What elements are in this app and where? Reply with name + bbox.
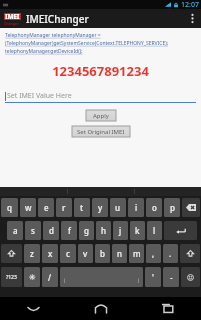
button[interactable]: q [1,198,18,217]
button[interactable]: b [95,244,110,263]
button[interactable]: v [78,244,93,263]
staticText: j [119,225,122,236]
button[interactable]: Space [60,267,143,287]
staticText: TelephonyManager telephonyManager = [5,32,101,39]
staticText: Set Original IMEI [77,128,125,136]
staticText: Changer [4,21,19,26]
staticText: o [152,202,157,213]
staticText: y [98,202,103,213]
button[interactable]: d [43,221,59,240]
staticText: a [13,225,18,236]
button[interactable]: Shift [180,244,200,263]
staticText: , [152,248,155,259]
button[interactable]: x [42,244,58,263]
button[interactable]: Backspace [182,198,200,217]
staticText: / [48,272,52,283]
button[interactable]: , [146,244,161,263]
staticText: l [153,225,156,236]
staticText: z [30,248,34,259]
staticText: e [44,202,49,213]
staticText: k [135,225,140,236]
button[interactable]: g [79,221,94,240]
staticText: n [117,248,123,259]
button[interactable]: Home [67,297,134,320]
button[interactable]: z [24,244,40,263]
staticText: i [135,202,138,213]
button[interactable]: Apply [86,110,116,121]
staticText: g [84,225,89,236]
staticText: s [31,225,35,236]
staticText: Set IMEI Value Here [7,91,72,101]
staticText: u [115,202,121,213]
button[interactable]: c [60,244,76,263]
staticText: f [68,225,71,236]
staticText: b [100,248,105,259]
button[interactable]: j [113,221,128,240]
button[interactable]: e [38,198,54,217]
button[interactable]: Emoji [181,267,200,287]
staticText: 1234567891234 [5,62,196,80]
button[interactable]: a [7,221,23,240]
staticText: . [169,248,172,259]
button[interactable]: ?123 [1,267,22,287]
button[interactable]: p [164,198,180,217]
staticText: t [80,202,84,213]
button[interactable]: / [42,267,58,287]
staticText: IMEI [5,13,20,20]
button[interactable]: n [112,244,127,263]
staticText: 12:07 [181,0,199,9]
button[interactable]: ' [145,267,161,287]
button[interactable]: t [74,198,90,217]
button[interactable]: ✳ [24,267,40,287]
staticText: ✳ [29,273,36,282]
button[interactable]: i [128,198,144,217]
button[interactable]: k [130,221,145,240]
staticText: p [170,202,175,213]
staticText: d [49,225,54,236]
button[interactable]: - [163,267,179,287]
button[interactable]: More options [183,9,201,28]
button[interactable]: Set Original IMEI [72,126,130,137]
button[interactable]: l [147,221,162,240]
staticText: h [101,225,107,236]
button[interactable]: Shift [1,244,22,263]
staticText: ' [152,272,154,283]
staticText: - [170,272,173,283]
staticText: q [7,202,12,213]
staticText: telephonyManager.getDeviceId(); [5,48,83,55]
staticText: w [25,202,32,213]
staticText: x [48,248,53,259]
staticText: IMEIChanger [26,12,89,26]
staticText: (TelephonyManager)getSystemService(Conte… [5,40,169,47]
button[interactable]: o [146,198,162,217]
button[interactable]: y [92,198,108,217]
button[interactable]: Set IMEI Value Here [5,90,196,103]
button[interactable]: s [25,221,41,240]
staticText: Apply [93,112,109,120]
staticText: v [83,248,88,259]
button[interactable]: Hide keyboard [0,297,67,320]
button[interactable]: h [96,221,111,240]
staticText: ?123 [6,274,17,281]
button[interactable]: m [129,244,144,263]
button[interactable]: Enter [164,221,197,240]
button[interactable]: Recent apps [134,297,201,320]
button[interactable]: w [20,198,36,217]
button[interactable]: f [61,221,77,240]
button[interactable]: r [56,198,72,217]
staticText: m [133,248,141,259]
staticText: r [62,202,66,213]
button[interactable]: . [163,244,178,263]
staticText: c [66,248,70,259]
button[interactable]: u [110,198,126,217]
